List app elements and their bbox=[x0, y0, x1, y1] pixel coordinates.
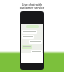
button[interactable]: Message bbox=[22, 35, 34, 39]
staticText: Live chat with customer service bbox=[0, 3, 64, 10]
button[interactable]: Message bbox=[22, 45, 32, 49]
button[interactable]: Message bbox=[29, 40, 42, 44]
button[interactable]: Phone preview bbox=[20, 11, 44, 70]
button[interactable] bbox=[26, 25, 39, 28]
button[interactable]: Message bbox=[22, 30, 37, 34]
button[interactable]: Message bbox=[31, 50, 42, 54]
